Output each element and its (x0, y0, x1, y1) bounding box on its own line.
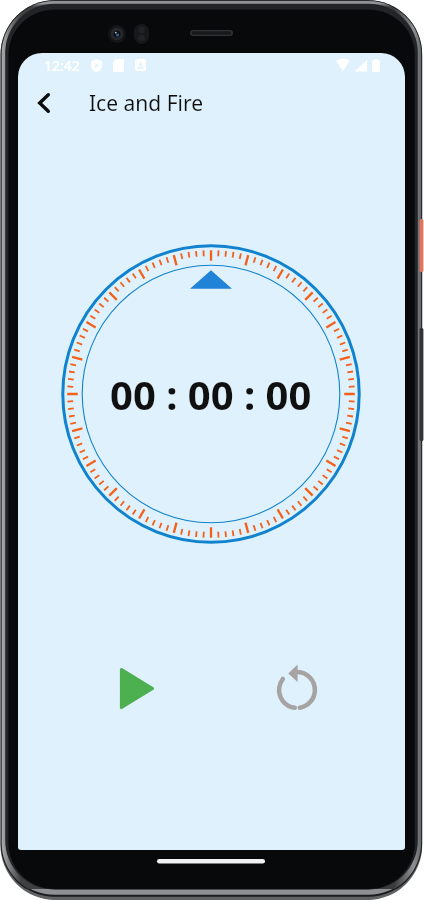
button[interactable]: Back (20, 79, 68, 127)
staticText: Ice and Fire (89, 89, 204, 118)
staticText: 12:42 (44, 56, 80, 75)
button[interactable]: Reset (269, 662, 325, 718)
button[interactable]: Start (109, 660, 165, 716)
staticText: 00 : 00 : 00 (110, 367, 312, 421)
